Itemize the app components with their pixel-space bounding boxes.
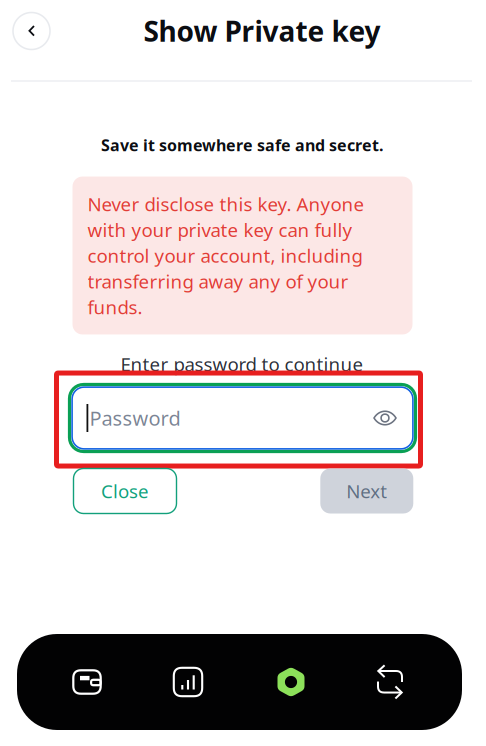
staticText: Show Private key xyxy=(143,12,380,50)
button[interactable]: Show password xyxy=(373,409,397,427)
button[interactable]: Analytics xyxy=(137,634,238,730)
button[interactable]: Swap xyxy=(339,634,440,730)
staticText: Password xyxy=(89,405,180,431)
staticText: Never disclose this key. Anyone with you… xyxy=(87,191,364,319)
staticText: Next xyxy=(346,479,387,503)
button[interactable]: Wallet xyxy=(36,634,137,730)
button[interactable]: Home xyxy=(240,634,341,730)
staticText: Save it somewhere safe and secret. xyxy=(101,134,383,156)
button[interactable]: Next xyxy=(320,468,413,513)
staticText: Enter password to continue xyxy=(120,352,363,376)
button[interactable]: Back xyxy=(13,12,50,49)
staticText: Close xyxy=(101,479,149,503)
button[interactable]: Close xyxy=(73,468,176,513)
